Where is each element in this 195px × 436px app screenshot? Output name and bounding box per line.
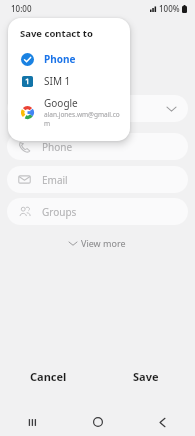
staticText: Cancel xyxy=(30,369,67,384)
button[interactable]: Phone xyxy=(7,133,188,160)
other: Expand account xyxy=(167,106,176,112)
staticText: SIM 1 xyxy=(44,74,71,88)
staticText: 100% xyxy=(159,3,180,14)
staticText: Save xyxy=(133,369,159,384)
staticText: Phone xyxy=(44,52,76,66)
button[interactable]: Expand account xyxy=(7,95,188,122)
staticText: Save contact to xyxy=(20,27,93,40)
staticText: Groups xyxy=(42,205,77,219)
button[interactable]: Email xyxy=(7,166,188,193)
button[interactable]: SIM 1 xyxy=(8,70,130,92)
staticText: 10:00 xyxy=(11,3,32,14)
staticText: Google xyxy=(44,96,78,110)
button[interactable]: Google xyxy=(8,92,130,132)
button[interactable]: Groups xyxy=(7,198,188,225)
button[interactable]: Phone xyxy=(8,48,130,70)
staticText: Phone xyxy=(42,140,73,154)
button[interactable]: Recents xyxy=(0,408,65,436)
staticText: alan.jones.wm@gmail.com xyxy=(44,110,122,128)
button[interactable]: View more xyxy=(0,233,195,253)
button[interactable]: Cancel xyxy=(0,361,97,392)
staticText: Email xyxy=(42,173,68,187)
staticText: View more xyxy=(81,237,126,249)
button[interactable]: Home xyxy=(65,408,130,436)
button[interactable]: Save xyxy=(97,361,195,392)
button[interactable]: Back xyxy=(130,408,195,436)
